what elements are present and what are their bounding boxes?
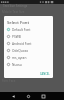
button[interactable]: Home [21, 92, 35, 100]
staticText: CANCEL [40, 72, 50, 75]
staticText: ms_ayran [12, 56, 27, 60]
staticText: Font Face [2, 79, 16, 83]
staticText: PSWB [12, 35, 21, 39]
staticText: Default Font [12, 28, 31, 32]
button[interactable]: ms_ayran [4, 54, 53, 61]
button[interactable]: Recent apps [36, 92, 50, 100]
staticText: Android Font [12, 42, 32, 46]
button[interactable]: PSWB [4, 33, 53, 40]
button[interactable]: CANCEL [37, 71, 53, 76]
button[interactable]: Android Font [4, 40, 53, 47]
button[interactable]: OdeQuoso [4, 47, 53, 54]
staticText: Text Size Settings [3, 4, 28, 8]
staticText: Select Font [7, 20, 29, 26]
button[interactable]: Back [6, 92, 20, 100]
staticText: Nuosu [12, 63, 22, 67]
staticText: Mobile Text Size [2, 10, 25, 14]
button[interactable]: Nuosu [4, 61, 53, 68]
staticText: OdeQuoso [12, 49, 29, 53]
button[interactable]: Default Font [4, 26, 53, 33]
